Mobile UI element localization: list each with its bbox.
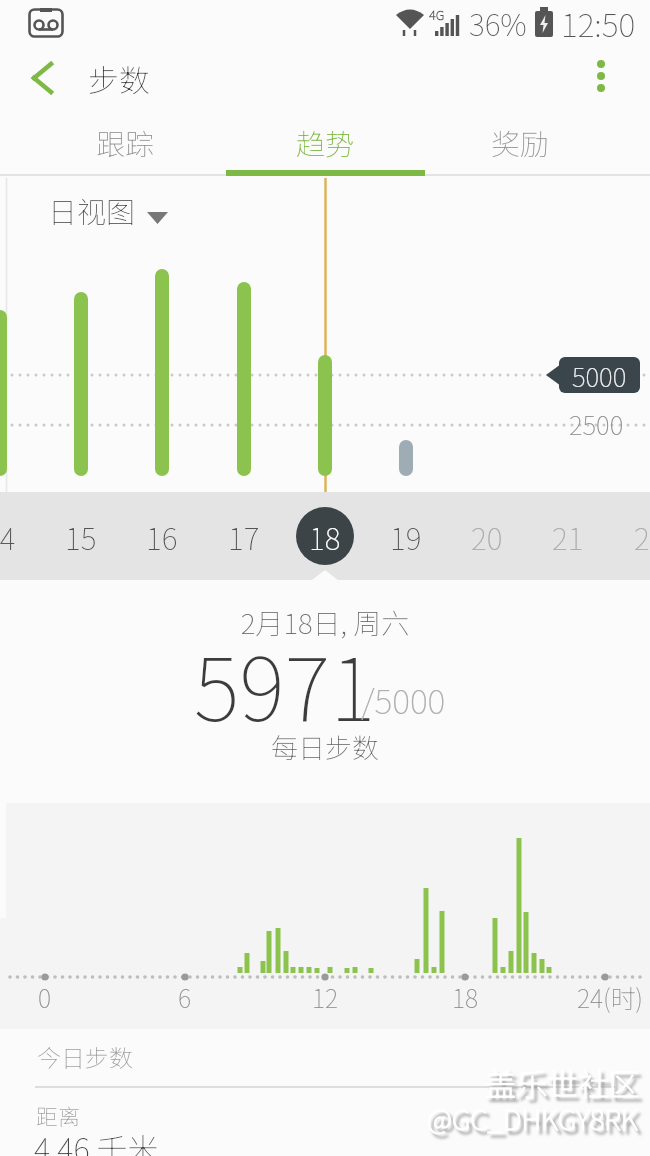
staticText: 距离 — [36, 1099, 81, 1131]
staticText: 盖乐世社区 — [485, 1060, 640, 1105]
staticText: 奖励 — [491, 121, 550, 163]
button[interactable]: 跟踪 — [45, 110, 205, 174]
staticText: 4.46 千米 — [34, 1125, 159, 1156]
button[interactable] — [588, 58, 614, 98]
staticText: 2500 — [569, 405, 624, 443]
staticText: 18 — [452, 979, 479, 1013]
staticText: 0 — [38, 979, 52, 1013]
staticText: 17 — [228, 515, 260, 558]
staticText: 14 — [0, 515, 16, 558]
staticText: 4G — [429, 5, 445, 24]
staticText: 12:50 — [561, 0, 636, 44]
staticText: 5000 — [572, 357, 627, 393]
staticText: 2月18日, 周六 — [0, 602, 650, 643]
staticText: 15 — [65, 515, 97, 558]
staticText: 5971 — [194, 620, 376, 746]
staticText: 21 — [552, 515, 584, 558]
staticText: 步数 — [88, 56, 150, 101]
staticText: 22 — [634, 515, 650, 558]
staticText: 今日步数 — [37, 1039, 133, 1074]
staticText: 跟踪 — [96, 121, 155, 163]
staticText: 20 — [471, 515, 503, 558]
button[interactable] — [30, 62, 56, 94]
button[interactable]: 趋势 — [245, 110, 405, 174]
staticText: 每日步数 — [0, 727, 650, 766]
button[interactable]: 日视图 — [48, 189, 168, 231]
staticText: 6 — [178, 979, 192, 1013]
staticText: 日视图 — [48, 189, 136, 231]
button[interactable]: 奖励 — [440, 110, 600, 174]
staticText: 趋势 — [296, 121, 355, 163]
staticText: /5000 — [361, 675, 446, 724]
staticText: 16 — [146, 515, 178, 558]
staticText: 12 — [312, 979, 339, 1013]
staticText: @GC_DHKGY8RK — [427, 1098, 638, 1139]
staticText: 19 — [390, 515, 422, 558]
staticText: 36% — [469, 1, 527, 44]
staticText: 24(时) — [577, 979, 644, 1015]
staticText: 18 — [309, 515, 341, 558]
